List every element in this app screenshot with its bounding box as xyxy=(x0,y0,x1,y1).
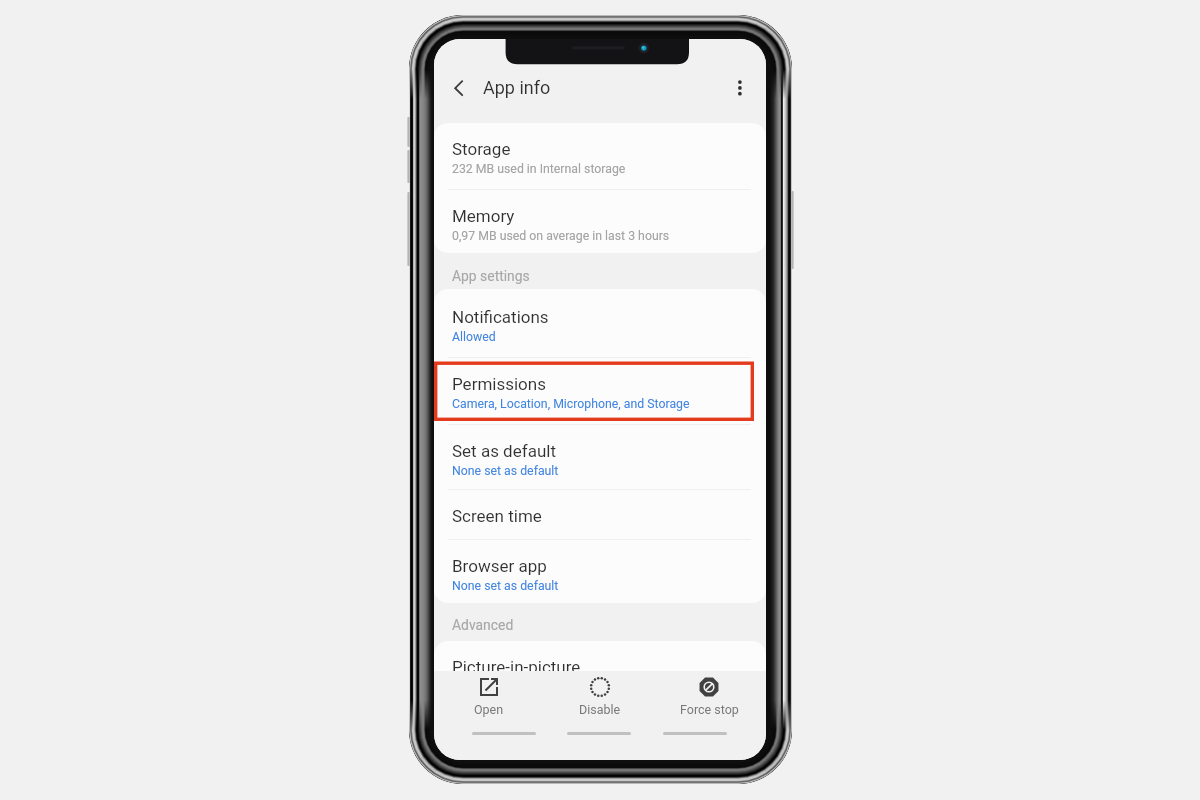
staticText: 232 MB used in Internal storage xyxy=(452,162,626,176)
staticText: Camera, Location, Microphone, and Storag… xyxy=(452,397,690,411)
staticText: Permissions xyxy=(452,374,546,394)
staticText: App info xyxy=(483,77,551,98)
staticText: Open xyxy=(474,702,504,717)
button[interactable]: Open xyxy=(439,671,539,727)
staticText: Allowed xyxy=(452,330,496,344)
staticText: Browser app xyxy=(452,556,547,576)
button[interactable]: More options xyxy=(720,67,760,107)
button[interactable]: Screen time xyxy=(434,490,766,539)
staticText: 0,97 MB used on average in last 3 hours xyxy=(452,229,670,243)
staticText: Disable xyxy=(579,702,621,717)
button[interactable]: Browser app xyxy=(434,540,766,603)
staticText: Picture-in-picture xyxy=(452,657,581,677)
staticText: App settings xyxy=(452,268,530,284)
button[interactable]: Force stop xyxy=(659,671,759,727)
button[interactable]: Memory xyxy=(434,190,766,253)
staticText: Force stop xyxy=(680,702,739,717)
button[interactable]: Storage xyxy=(434,123,766,189)
staticText: Set as default xyxy=(452,441,556,461)
staticText: None set as default xyxy=(452,464,559,478)
button[interactable]: Picture-in-picture xyxy=(434,641,766,690)
button[interactable]: Notifications xyxy=(434,289,766,357)
staticText: Notifications xyxy=(452,307,549,327)
button[interactable]: Set as default xyxy=(434,425,766,489)
button[interactable]: Disable xyxy=(550,671,650,727)
staticText: Advanced xyxy=(452,617,514,633)
staticText: Memory xyxy=(452,206,515,226)
staticText: None set as default xyxy=(452,579,559,593)
button[interactable]: Back xyxy=(439,67,479,107)
staticText: Screen time xyxy=(452,506,542,526)
button[interactable]: Permissions xyxy=(434,358,766,424)
staticText: Storage xyxy=(452,139,511,159)
